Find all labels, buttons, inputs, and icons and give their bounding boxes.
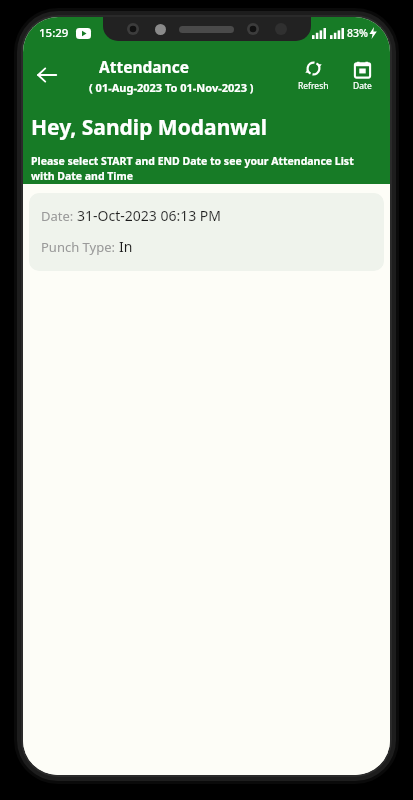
staticText: In: [119, 237, 133, 256]
staticText: 15:29: [39, 25, 69, 41]
staticText: Refresh: [298, 80, 329, 92]
staticText: Please select START and END Date to see …: [31, 154, 372, 183]
button[interactable]: Back: [23, 51, 71, 99]
button[interactable]: Date: [342, 57, 382, 94]
staticText: Date: [353, 80, 372, 92]
staticText: Hey, Sandip Modanwal: [31, 113, 268, 142]
staticText: Punch Type:: [41, 238, 119, 256]
staticText: 31-Oct-2023 06:13 PM: [77, 206, 222, 225]
staticText: ( 01-Aug-2023 To 01-Nov-2023 ): [89, 80, 254, 95]
staticText: 83%: [347, 26, 368, 40]
staticText: Date:: [41, 207, 77, 225]
staticText: Attendance: [99, 56, 189, 77]
button[interactable]: Refresh: [291, 57, 336, 94]
button[interactable]: Date:: [29, 193, 384, 271]
